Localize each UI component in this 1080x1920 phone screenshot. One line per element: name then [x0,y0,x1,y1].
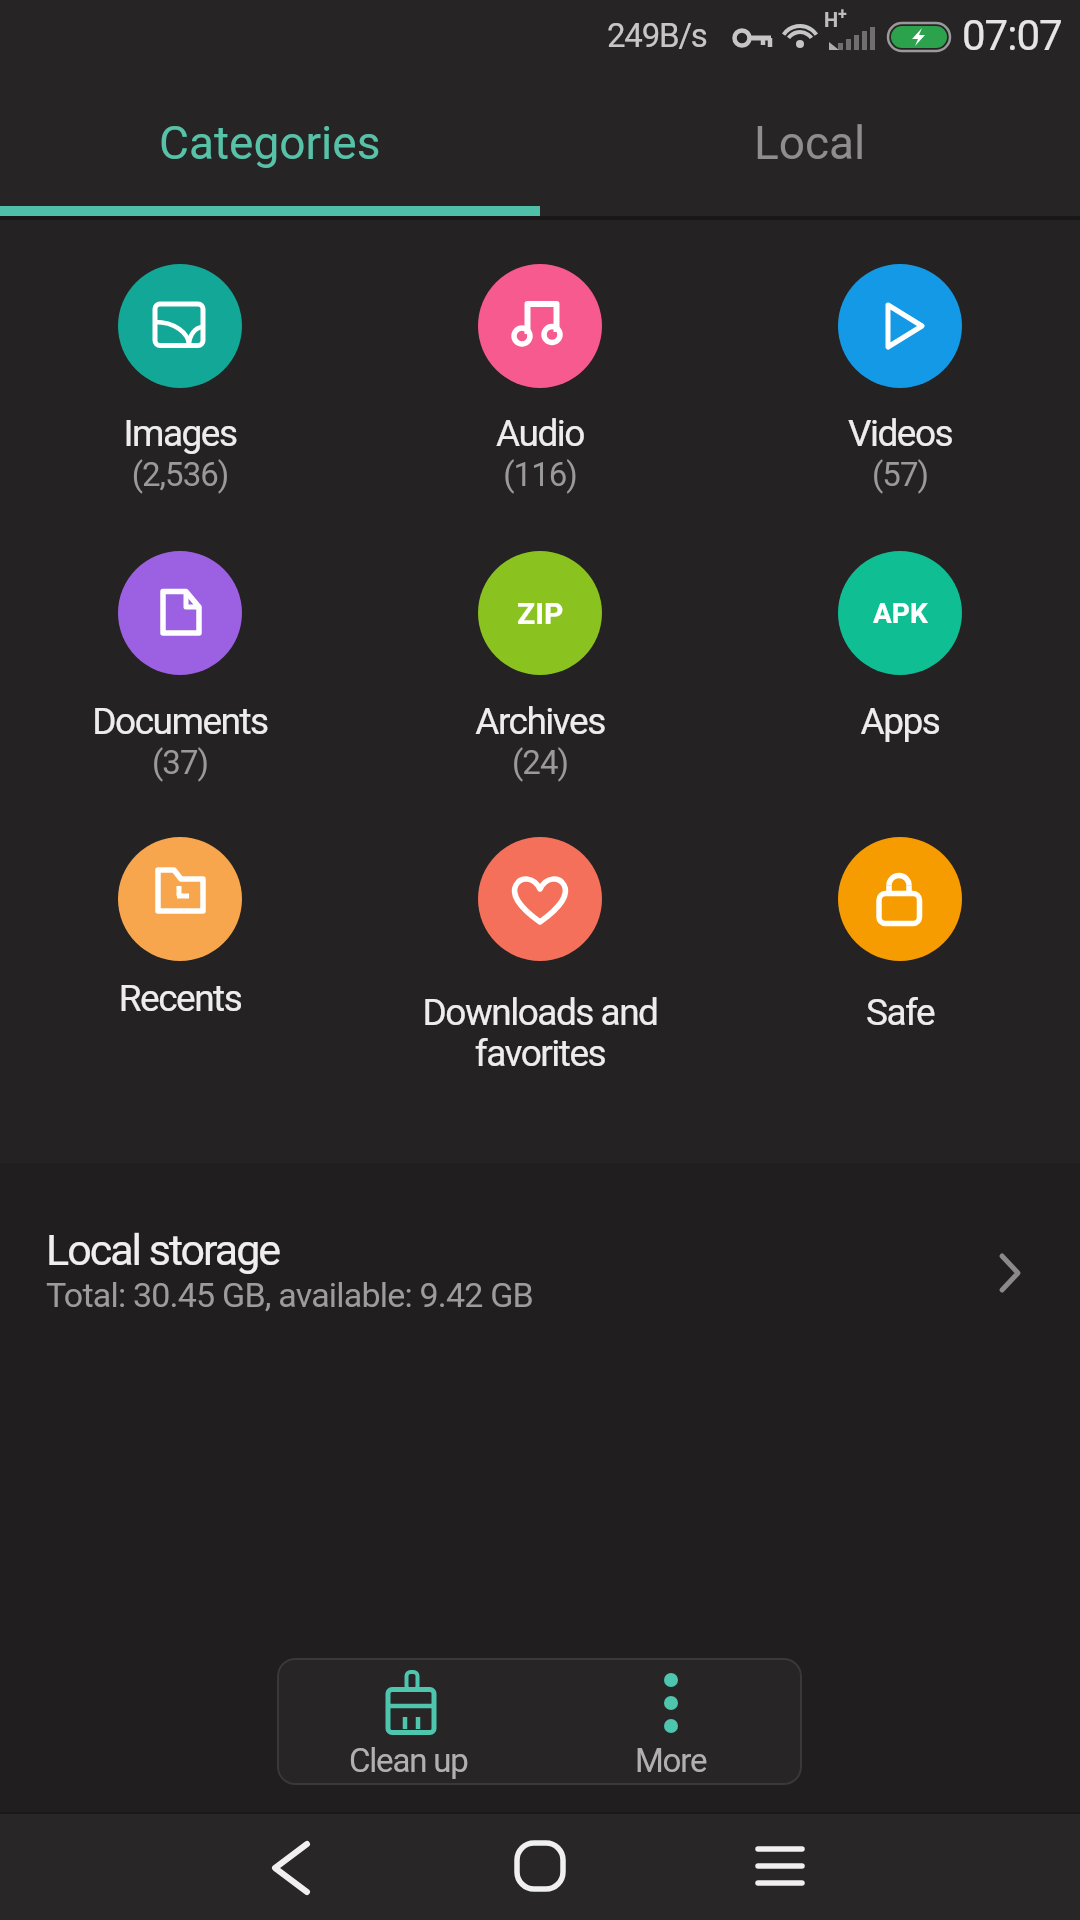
staticText: ZIP [517,596,564,631]
staticText: Audio [360,412,720,455]
staticText: More [635,1741,707,1780]
button[interactable]: Documents [0,551,360,782]
staticText: Archives [360,700,720,743]
button[interactable]: Categories [0,80,540,206]
staticText: Documents [0,700,360,743]
button[interactable]: Local [540,80,1080,206]
staticText: Videos [720,412,1080,455]
button[interactable]: Recents [0,837,360,1020]
staticText: H [824,8,839,31]
button[interactable]: ZIP [360,551,720,782]
staticText: 07:07 [962,11,1062,60]
staticText: (24) [360,743,720,782]
staticText: Local [754,116,866,170]
staticText: Safe [720,991,1080,1034]
button[interactable]: Local storage [0,1205,1080,1340]
staticText: (116) [360,455,720,494]
button[interactable] [200,1812,380,1920]
button[interactable]: Clean up [277,1658,539,1785]
button[interactable]: APK [720,551,1080,743]
staticText: Images [0,412,360,455]
staticText: Categories [159,116,381,170]
staticText: 249B/s [607,16,707,55]
staticText: (2,536) [0,455,360,494]
staticText: (57) [720,455,1080,494]
staticText: Clean up [349,1741,468,1780]
button[interactable]: More [539,1658,802,1785]
button[interactable]: Downloads and favorites [360,837,720,1075]
button[interactable]: Videos [720,264,1080,494]
staticText: APK [873,597,928,630]
staticText: Downloads and favorites [360,991,720,1075]
staticText: + [838,4,847,23]
button[interactable]: Images [0,264,360,494]
staticText: Local storage [46,1225,280,1275]
button[interactable]: Safe [720,837,1080,1034]
staticText: Total: 30.45 GB, available: 9.42 GB [46,1275,533,1315]
button[interactable] [450,1812,630,1920]
staticText: Apps [720,700,1080,743]
button[interactable]: Audio [360,264,720,494]
staticText: (37) [0,743,360,782]
staticText: Recents [0,977,360,1020]
button[interactable] [690,1812,870,1920]
